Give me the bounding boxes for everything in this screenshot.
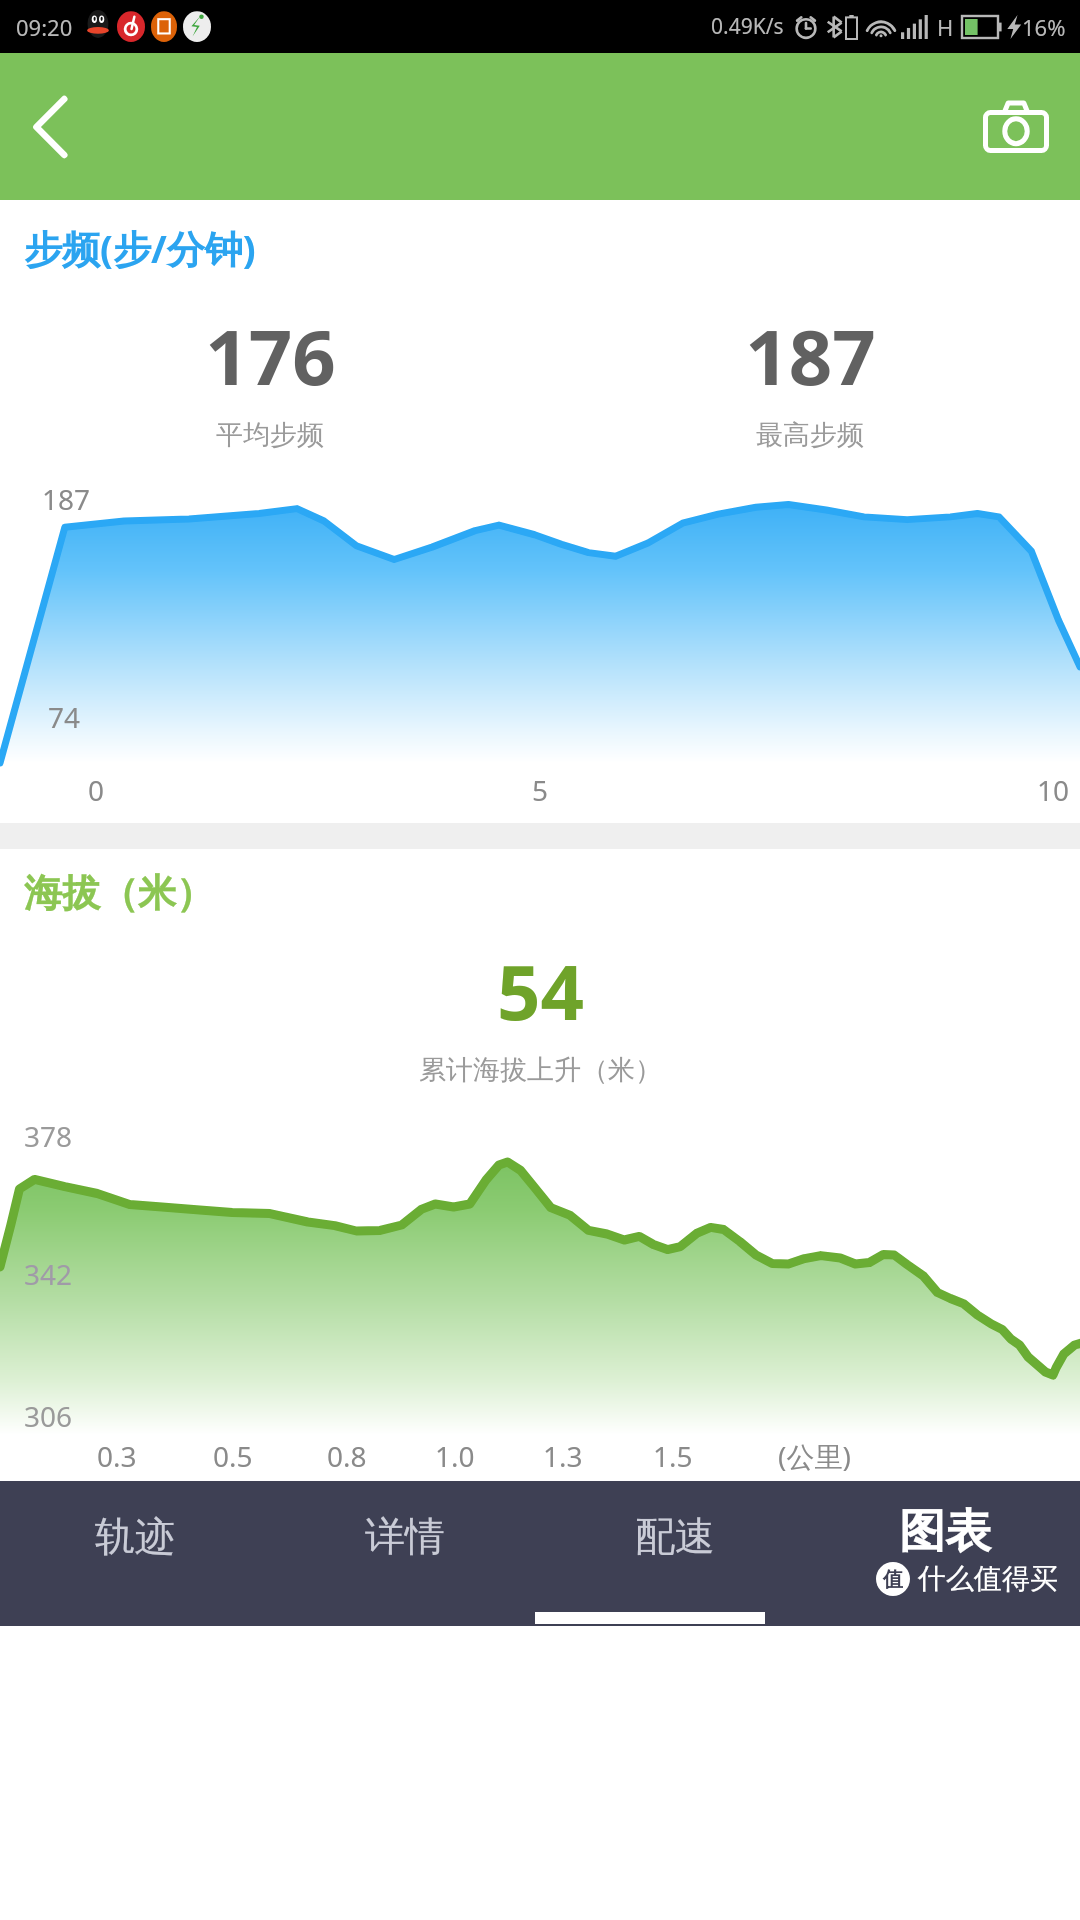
staticText: 详情 [365,1511,445,1561]
staticText: 54 [497,939,584,1043]
staticText: 176 [205,304,336,408]
staticText: 378 [24,1117,73,1155]
staticText: 1.3 [543,1437,583,1475]
staticText: 什么值得买 [918,1561,1058,1596]
staticText: 海拔（米） [24,869,214,917]
staticText: 0.3 [97,1437,137,1475]
staticText: 187 [42,480,91,518]
button[interactable]: Back [14,91,86,163]
staticText: 1.0 [435,1437,475,1475]
staticText: 累计海拔上升（米） [419,1053,662,1087]
staticText: 5 [532,771,549,809]
staticText: 342 [24,1255,73,1293]
staticText: 0.49K/s [711,12,784,41]
staticText: 74 [48,698,81,736]
staticText: H [937,12,954,42]
staticText: 09:20 [16,12,73,42]
staticText: 187 [745,304,876,408]
button[interactable]: 轨迹 [0,1481,270,1626]
button[interactable]: Camera [972,83,1060,171]
staticText: 轨迹 [95,1511,175,1561]
staticText: 16% [1022,12,1066,42]
staticText: 值 [883,1567,903,1592]
staticText: (公里) [778,1437,851,1475]
staticText: 配速 [635,1511,715,1561]
staticText: 步频(步/分钟) [24,222,256,274]
staticText: 10 [1037,771,1070,809]
staticText: 最高步频 [756,418,864,452]
button[interactable]: 配速 [540,1481,810,1626]
staticText: 0.5 [213,1437,253,1475]
staticText: 图表 [899,1503,991,1561]
button[interactable]: 详情 [270,1481,540,1626]
staticText: 平均步频 [216,418,324,452]
staticText: 0.8 [327,1437,367,1475]
staticText: 0 [88,771,105,809]
staticText: 1.5 [653,1437,693,1475]
staticText: 306 [24,1397,73,1435]
button[interactable]: 图表 [810,1481,1080,1626]
